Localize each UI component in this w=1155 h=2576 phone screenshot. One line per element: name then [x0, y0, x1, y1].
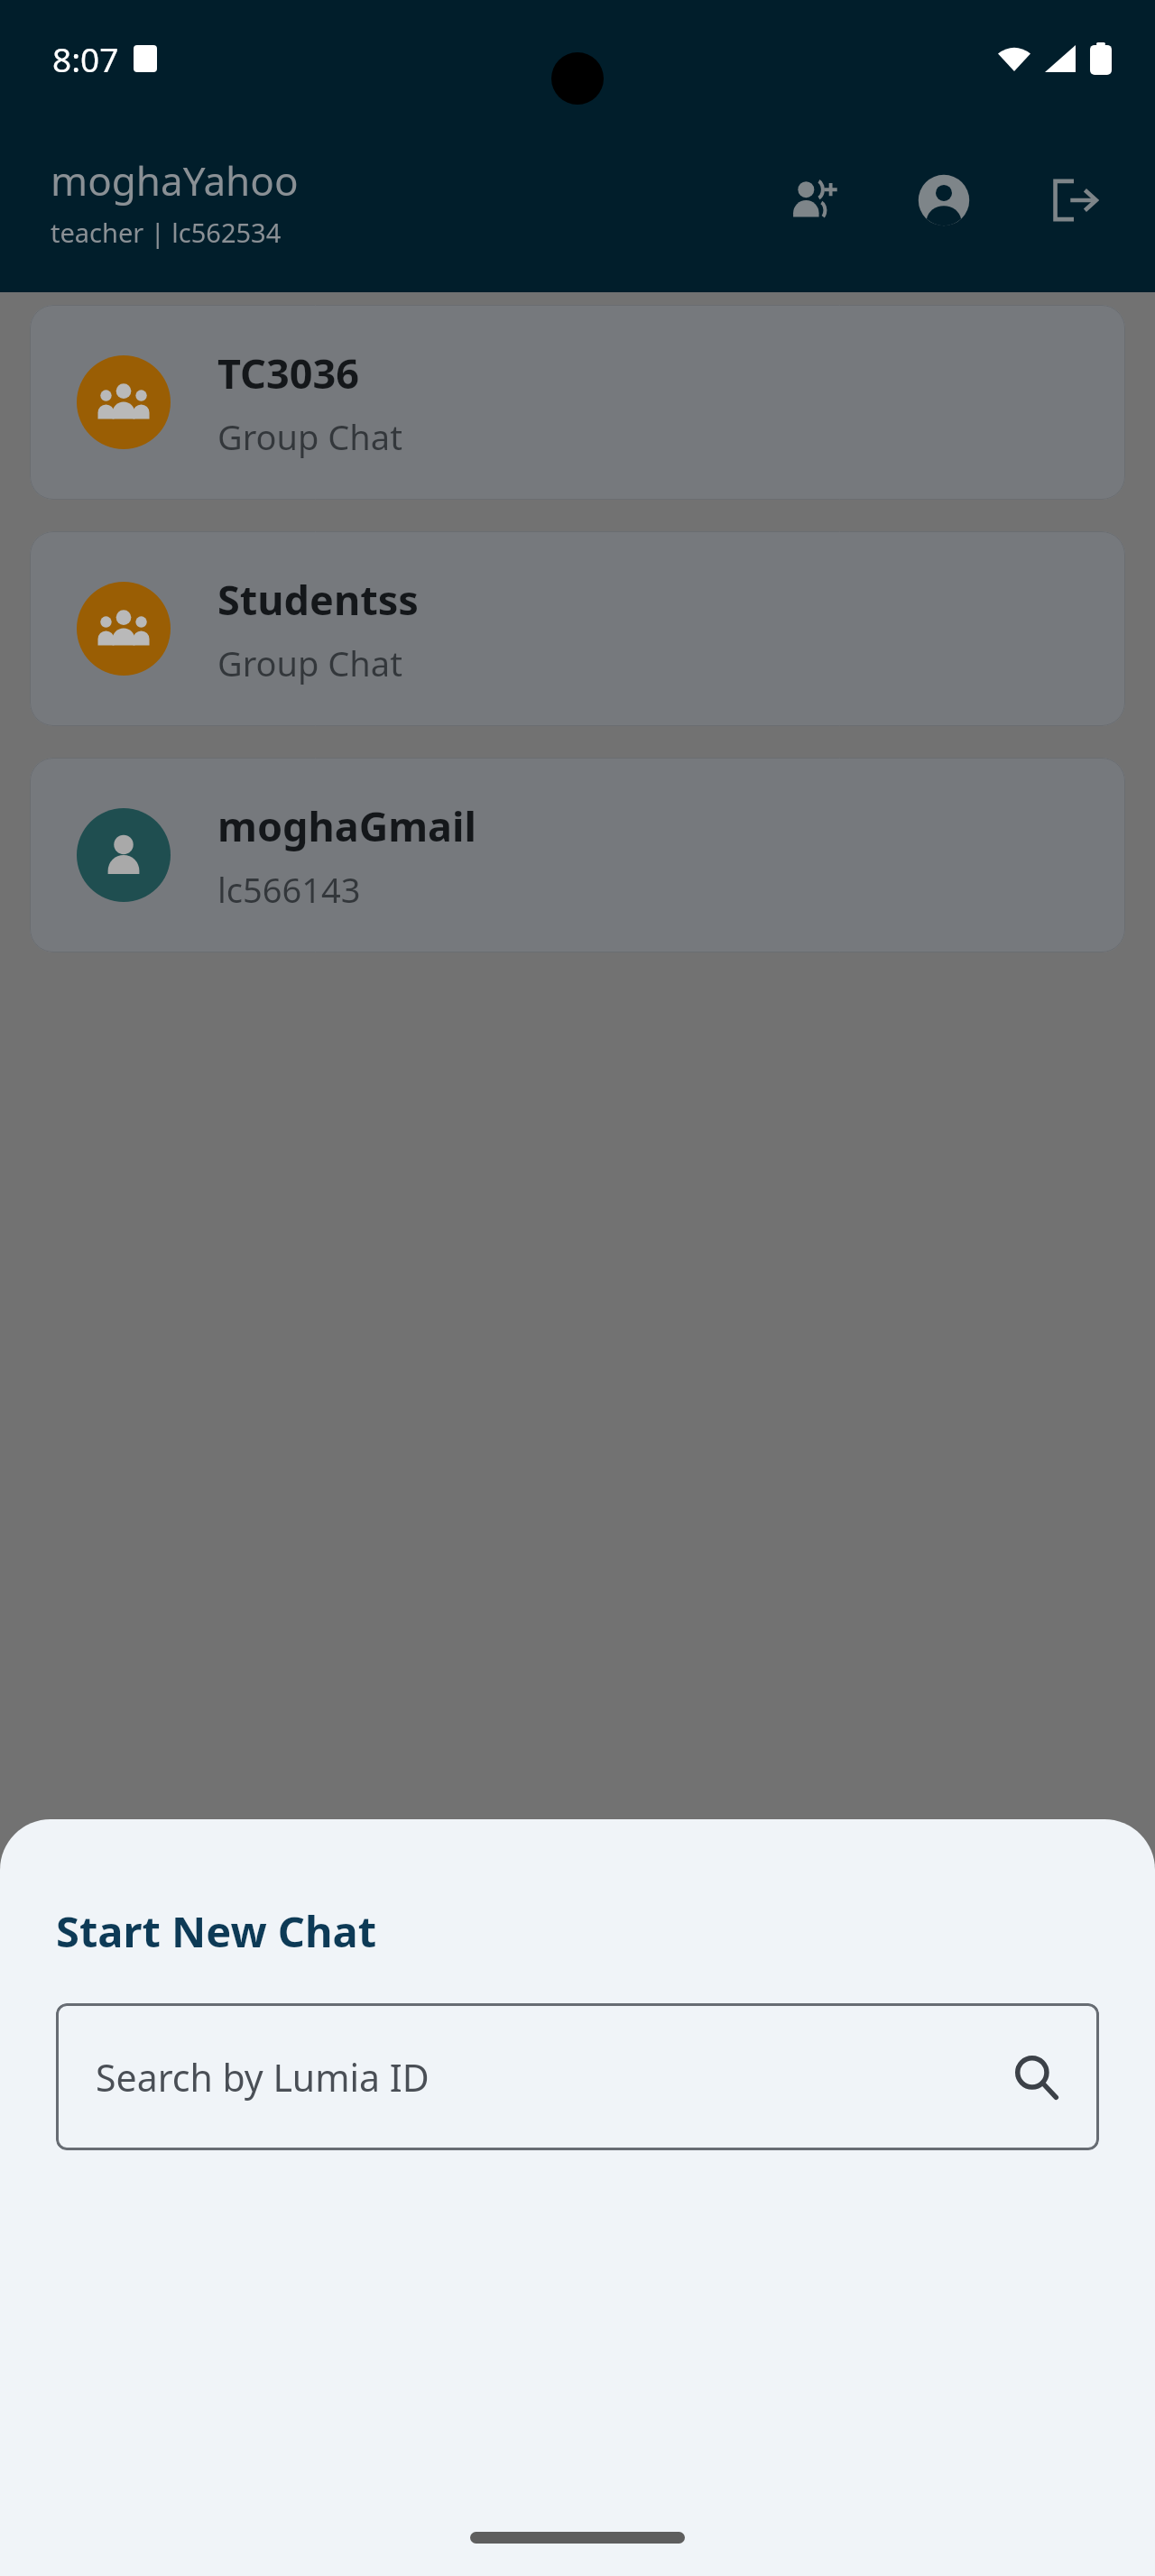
button[interactable]: Search by Lumia ID	[56, 2003, 1099, 2150]
staticText: lc566143	[217, 866, 361, 913]
button[interactable]: moghaGmail	[30, 758, 1125, 952]
button[interactable]: Add contact	[772, 159, 855, 242]
button[interactable]: TC3036	[30, 305, 1125, 500]
staticText: Search by Lumia ID	[96, 2052, 430, 2102]
staticText: TC3036	[217, 345, 359, 400]
staticText: Group Chat	[217, 639, 402, 686]
staticText: 8:07	[52, 36, 119, 81]
staticText: Start New Chat	[56, 1902, 377, 1960]
staticText: Group Chat	[217, 413, 402, 460]
staticText: Studentss	[217, 572, 419, 627]
button[interactable]: Log out	[1032, 159, 1115, 242]
staticText: moghaYahoo	[51, 153, 299, 207]
staticText: moghaGmail	[217, 798, 476, 853]
button[interactable]: Studentss	[30, 531, 1125, 726]
staticText: teacher | lc562534	[51, 215, 282, 250]
button[interactable]: Account	[902, 159, 985, 242]
